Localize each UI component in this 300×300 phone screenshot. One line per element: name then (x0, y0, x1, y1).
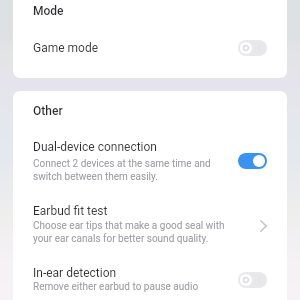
staticText: Choose ear tips that make a good seal wi… (33, 220, 244, 244)
button[interactable]: Game mode (13, 31, 287, 65)
button[interactable]: Dual-device connection (238, 153, 267, 169)
staticText: In-ear detection (33, 266, 117, 280)
other: Open earbud fit test (256, 218, 267, 234)
button[interactable]: Game mode (238, 40, 267, 56)
staticText: Dual-device connection (33, 140, 157, 154)
button[interactable]: Dual-device connection (13, 134, 287, 191)
staticText: Game mode (33, 41, 238, 55)
button[interactable]: Earbud fit test (13, 198, 287, 253)
staticText: Mode (33, 4, 64, 18)
staticText: Remove either earbud to pause audio (33, 281, 199, 293)
button[interactable]: In-ear detection (238, 272, 267, 288)
staticText: Other (33, 104, 63, 118)
staticText: Earbud fit test (33, 204, 108, 218)
staticText: Connect 2 devices at the same time and s… (33, 158, 226, 182)
button[interactable]: In-ear detection (13, 260, 287, 300)
